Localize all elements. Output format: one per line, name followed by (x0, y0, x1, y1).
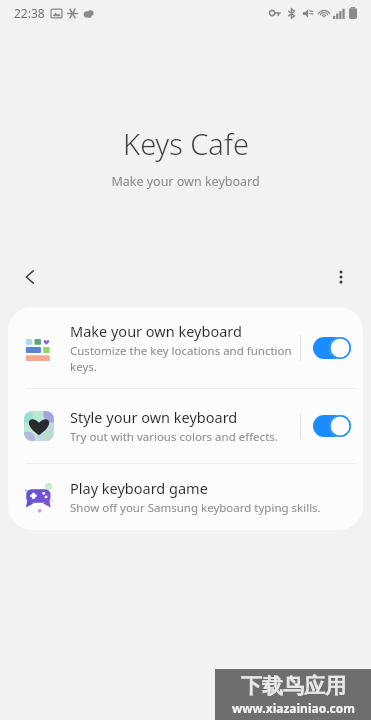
staticText: 下载鸟应用 (241, 673, 346, 699)
staticText: Style your own keyboard (70, 407, 238, 427)
staticText: Make your own keyboard (70, 321, 242, 341)
button[interactable]: Toggle Make your own keyboard (301, 325, 363, 371)
button[interactable]: Style your own keyboard (8, 389, 363, 463)
staticText: Try out with various colors and effects. (70, 429, 278, 445)
button[interactable]: Make your own keyboard (8, 307, 363, 388)
button[interactable]: More options (319, 255, 363, 299)
staticText: Show off your Samsung keyboard typing sk… (70, 500, 321, 516)
staticText: www.xiazainiao.com (232, 700, 355, 716)
staticText: 22:38 (14, 5, 45, 21)
staticText: Customize the key locations and function… (70, 343, 300, 374)
staticText: Play keyboard game (70, 478, 208, 498)
button[interactable]: Toggle Style your own keyboard (301, 403, 363, 449)
button[interactable]: Play keyboard game (8, 464, 363, 530)
button[interactable]: Back (8, 255, 52, 299)
staticText: Keys Cafe (123, 124, 249, 163)
staticText: Make your own keyboard (111, 173, 260, 190)
